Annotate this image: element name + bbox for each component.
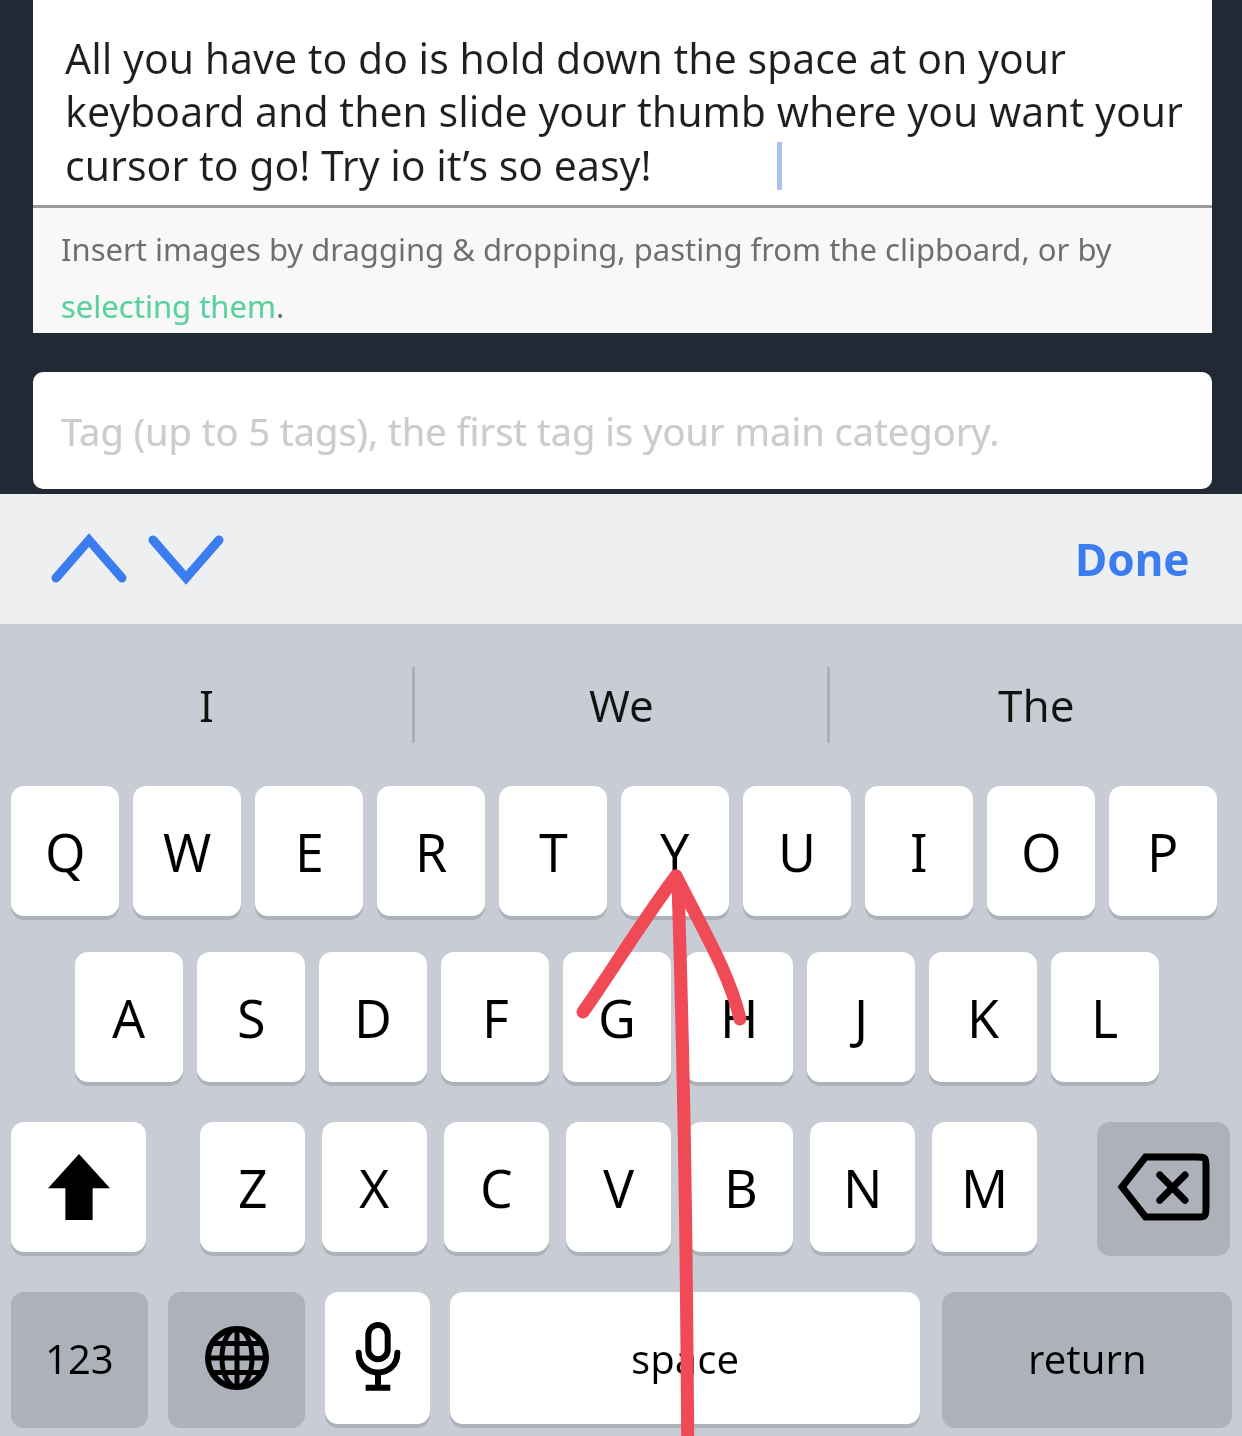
staticText: E (295, 816, 324, 887)
button[interactable]: W (133, 786, 241, 916)
staticText: V (603, 1152, 635, 1223)
button[interactable]: Dictate (325, 1292, 430, 1424)
staticText: P (1147, 816, 1179, 887)
staticText: Y (660, 816, 690, 887)
staticText: The (998, 675, 1075, 735)
button[interactable]: 123 (11, 1292, 148, 1424)
button[interactable]: Previous field (42, 514, 136, 604)
staticText: O (1021, 816, 1062, 887)
button[interactable]: C (444, 1122, 549, 1252)
staticText: L (1091, 982, 1119, 1053)
button[interactable]: G (563, 952, 671, 1082)
button[interactable]: I (865, 786, 973, 916)
staticText: T (539, 816, 568, 887)
button[interactable]: The (830, 624, 1242, 786)
button[interactable]: R (377, 786, 485, 916)
button[interactable]: F (441, 952, 549, 1082)
button[interactable]: space (450, 1292, 920, 1424)
button[interactable]: Done (1063, 521, 1202, 597)
staticText: R (415, 816, 448, 887)
staticText: G (598, 982, 636, 1053)
staticText: F (482, 982, 509, 1053)
button[interactable]: M (932, 1122, 1037, 1252)
staticText: N (843, 1152, 883, 1223)
button[interactable]: Tag (up to 5 tags), the first tag is you… (33, 372, 1212, 489)
staticText: U (778, 816, 817, 887)
button[interactable]: Q (11, 786, 119, 916)
button[interactable]: D (319, 952, 427, 1082)
button[interactable]: H (685, 952, 793, 1082)
button[interactable]: Switch keyboard (168, 1292, 305, 1424)
button[interactable]: J (807, 952, 915, 1082)
button[interactable] (11, 1122, 146, 1252)
staticText: space (631, 1331, 739, 1385)
button[interactable]: All you have to do is hold down the spac… (33, 0, 1212, 205)
button[interactable]: return (942, 1292, 1232, 1424)
staticText: We (589, 675, 654, 735)
staticText: Insert images by dragging & dropping, pa… (61, 228, 1192, 327)
button[interactable]: E (255, 786, 363, 916)
staticText: S (237, 982, 266, 1053)
staticText: W (163, 816, 212, 887)
staticText: J (854, 982, 869, 1053)
button[interactable]: I (0, 624, 412, 786)
button[interactable]: N (810, 1122, 915, 1252)
staticText: Done (1075, 529, 1190, 589)
button[interactable]: S (197, 952, 305, 1082)
button[interactable]: Y (621, 786, 729, 916)
staticText: K (967, 982, 1000, 1053)
button[interactable]: K (929, 952, 1037, 1082)
staticText: return (1028, 1331, 1147, 1385)
button[interactable]: Delete (1097, 1122, 1230, 1252)
button[interactable]: V (566, 1122, 671, 1252)
staticText: B (724, 1152, 758, 1223)
button[interactable]: Next field (139, 514, 233, 604)
button[interactable]: We (415, 624, 827, 786)
button[interactable]: T (499, 786, 607, 916)
staticText: X (359, 1152, 390, 1223)
button[interactable]: B (688, 1122, 793, 1252)
staticText: I (199, 675, 214, 735)
staticText: I (910, 816, 928, 887)
button[interactable]: L (1051, 952, 1159, 1082)
staticText: 123 (45, 1331, 114, 1385)
staticText: C (480, 1152, 513, 1223)
staticText: Q (45, 816, 86, 887)
staticText: All you have to do is hold down the spac… (65, 30, 1192, 193)
staticText: A (112, 982, 146, 1053)
staticText: Z (238, 1152, 268, 1223)
staticText: M (961, 1152, 1009, 1223)
staticText: D (354, 982, 392, 1053)
button[interactable]: Z (200, 1122, 305, 1252)
button[interactable]: P (1109, 786, 1217, 916)
staticText: H (720, 982, 759, 1053)
button[interactable]: A (75, 952, 183, 1082)
button[interactable]: U (743, 786, 851, 916)
button[interactable]: O (987, 786, 1095, 916)
button[interactable]: X (322, 1122, 427, 1252)
staticText: Tag (up to 5 tags), the first tag is you… (61, 405, 1000, 457)
